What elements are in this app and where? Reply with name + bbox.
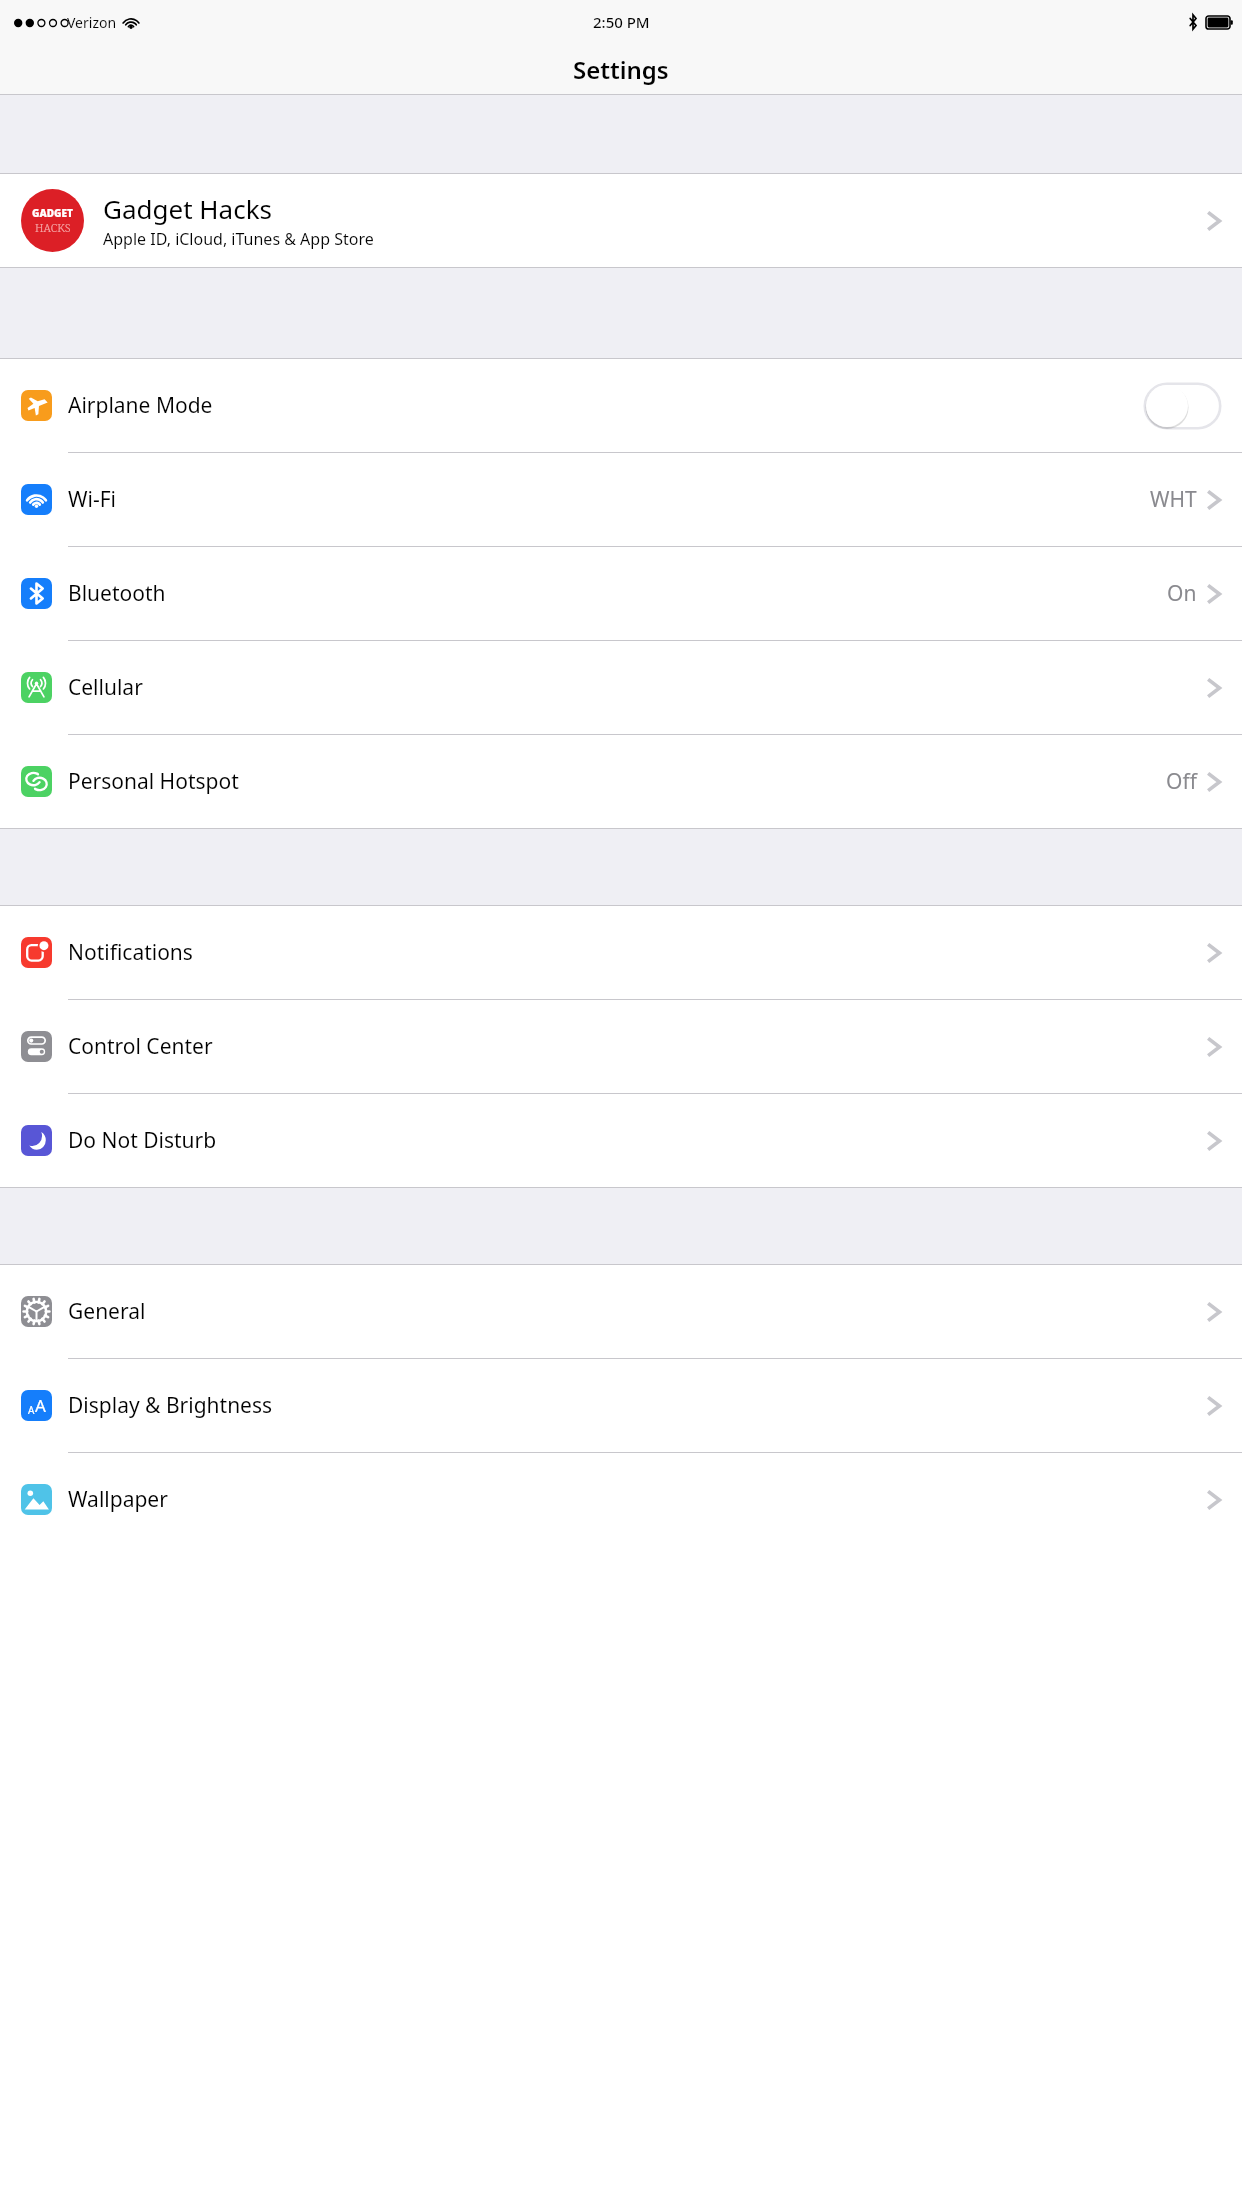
staticText: HACKS	[35, 220, 71, 235]
staticText: Apple ID, iCloud, iTunes & App Store	[103, 228, 374, 250]
button[interactable]: Cellular	[0, 641, 1242, 734]
button[interactable]: Bluetooth	[0, 547, 1242, 640]
staticText: Settings	[573, 53, 669, 86]
button[interactable]: Airplane Mode toggle	[1144, 383, 1221, 429]
staticText: Personal Hotspot	[68, 767, 1166, 796]
staticText: WHT	[1150, 485, 1197, 514]
staticText: Do Not Disturb	[68, 1126, 1208, 1155]
staticText: Wi-Fi	[68, 485, 1150, 514]
staticText: Wallpaper	[68, 1485, 1208, 1514]
button[interactable]: Wallpaper	[0, 1453, 1242, 1546]
staticText: Notifications	[68, 938, 1208, 967]
staticText: Gadget Hacks	[103, 191, 272, 226]
staticText: Cellular	[68, 673, 1208, 702]
button[interactable]: Notifications	[0, 906, 1242, 999]
button[interactable]: Control Center	[0, 1000, 1242, 1093]
staticText: GADGET	[32, 206, 73, 220]
staticText: Control Center	[68, 1032, 1208, 1061]
staticText: Verizon	[67, 13, 117, 32]
staticText: Bluetooth	[68, 579, 1167, 608]
button[interactable]: GADGET	[0, 174, 1242, 267]
button[interactable]: Airplane Mode	[0, 359, 1242, 452]
staticText: Off	[1166, 767, 1197, 796]
staticText: A	[28, 1403, 35, 1417]
staticText: A	[35, 1394, 46, 1417]
button[interactable]: Do Not Disturb	[0, 1094, 1242, 1187]
staticText: Airplane Mode	[68, 391, 1144, 420]
button[interactable]: General	[0, 1265, 1242, 1358]
button[interactable]: A	[0, 1359, 1242, 1452]
button[interactable]: Wi-Fi	[0, 453, 1242, 546]
staticText: On	[1167, 579, 1197, 608]
staticText: Display & Brightness	[68, 1391, 1208, 1420]
staticText: 2:50 PM	[593, 12, 650, 32]
button[interactable]: Personal Hotspot	[0, 735, 1242, 828]
staticText: General	[68, 1297, 1208, 1326]
